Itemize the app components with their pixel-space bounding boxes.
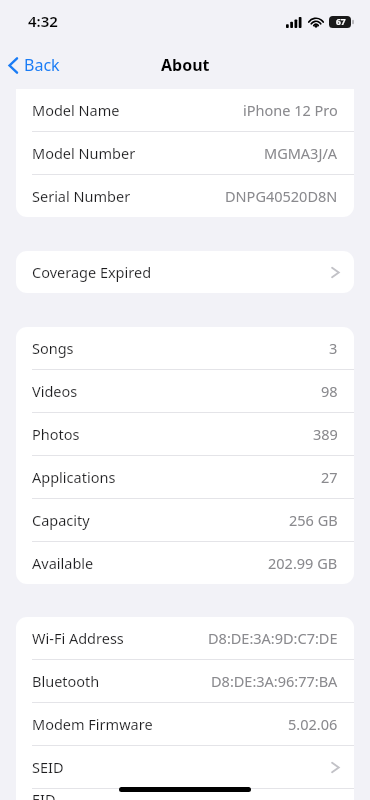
staticText: Modem Firmware [32, 714, 153, 734]
staticText: 5.02.06 [288, 714, 338, 734]
button[interactable]: Photos [16, 413, 354, 455]
button[interactable]: EID [16, 789, 354, 800]
staticText: Bluetooth [32, 671, 100, 691]
button[interactable]: Model Number [16, 132, 354, 174]
staticText: Model Name [32, 100, 120, 120]
staticText: Videos [32, 381, 78, 401]
staticText: Coverage Expired [32, 262, 152, 282]
staticText: Photos [32, 424, 80, 444]
staticText: 67 [336, 16, 346, 28]
button[interactable]: Serial Number [16, 175, 354, 217]
staticText: 98 [321, 381, 338, 401]
staticText: 3 [329, 338, 338, 358]
button[interactable]: Songs [16, 327, 354, 369]
button[interactable]: Applications [16, 456, 354, 498]
staticText: 256 GB [289, 510, 338, 530]
staticText: 202.99 GB [268, 553, 338, 573]
button[interactable]: SEID [16, 746, 354, 788]
staticText: 389 [313, 424, 338, 444]
button[interactable]: Model Name [16, 89, 354, 131]
staticText: Model Number [32, 143, 136, 163]
staticText: Applications [32, 467, 116, 487]
staticText: EID [32, 789, 56, 800]
button[interactable]: Modem Firmware [16, 703, 354, 745]
staticText: Serial Number [32, 186, 131, 206]
staticText: MGMA3J/A [264, 143, 338, 163]
staticText: DNPG40520D8N [225, 186, 338, 206]
button[interactable]: Coverage Expired [16, 251, 354, 293]
staticText: About [161, 54, 210, 76]
staticText: 4:32 [28, 11, 58, 31]
staticText: Back [24, 54, 60, 76]
button[interactable]: Wi-Fi Address [16, 617, 354, 659]
staticText: Songs [32, 338, 74, 358]
staticText: D8:DE:3A:96:77:BA [211, 671, 338, 691]
staticText: SEID [32, 757, 64, 777]
button[interactable]: Back [0, 44, 68, 86]
staticText: D8:DE:3A:9D:C7:DE [208, 628, 338, 648]
button[interactable]: Available [16, 542, 354, 584]
button[interactable]: Capacity [16, 499, 354, 541]
staticText: iPhone 12 Pro [243, 100, 338, 120]
button[interactable]: Videos [16, 370, 354, 412]
button[interactable]: Bluetooth [16, 660, 354, 702]
staticText: Capacity [32, 510, 90, 530]
other: Home indicator [119, 787, 251, 792]
staticText: 27 [321, 467, 338, 487]
staticText: Available [32, 553, 94, 573]
staticText: Wi-Fi Address [32, 628, 124, 648]
